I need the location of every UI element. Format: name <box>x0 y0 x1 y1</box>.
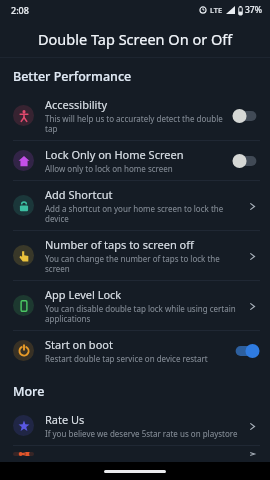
staticText: This will help us to accurately detect t… <box>45 113 226 134</box>
button[interactable]: Accessibility <box>232 108 260 124</box>
button[interactable]: Share <box>244 452 260 456</box>
button[interactable]: Rate Us <box>244 418 260 434</box>
staticText: You can change the number of taps to loc… <box>45 253 238 274</box>
staticText: Restart double tap service on device res… <box>45 353 208 364</box>
staticText: LTE <box>210 5 223 15</box>
staticText: Add a shortcut on your home screen to lo… <box>45 203 238 224</box>
button[interactable]: App Level Lock <box>0 281 270 330</box>
staticText: If you believe we deserve 5star rate us … <box>45 428 238 439</box>
staticText: Accessibility <box>45 97 108 112</box>
staticText: More <box>13 383 45 400</box>
button[interactable]: Start on boot <box>232 343 260 359</box>
staticText: App Level Lock <box>45 287 122 302</box>
button[interactable]: Lock Only on Home Screen <box>232 153 260 169</box>
button[interactable]: Start on boot <box>0 331 270 370</box>
staticText: Start on boot <box>45 337 113 352</box>
button[interactable]: Share <box>0 446 270 462</box>
staticText: Lock Only on Home Screen <box>45 147 184 162</box>
staticText: Rate Us <box>45 412 85 427</box>
staticText: Better Performance <box>13 68 132 85</box>
button[interactable]: Number of taps to screen off <box>244 248 260 264</box>
button[interactable]: Lock Only on Home Screen <box>0 141 270 180</box>
staticText: You can disable double tap lock while us… <box>45 303 238 324</box>
staticText: Add Shortcut <box>45 187 113 202</box>
staticText: 37% <box>245 4 262 16</box>
button[interactable]: Accessibility <box>0 91 270 140</box>
button[interactable]: Number of taps to screen off <box>0 231 270 280</box>
button[interactable]: Add Shortcut <box>0 181 270 230</box>
staticText: Double Tap Screen On or Off <box>38 29 233 49</box>
staticText: 2:08 <box>11 4 29 16</box>
staticText: Number of taps to screen off <box>45 237 194 252</box>
button[interactable]: Add Shortcut <box>244 198 260 214</box>
button[interactable]: Rate Us <box>0 406 270 445</box>
staticText: Allow only to lock on home screen <box>45 163 173 174</box>
button[interactable]: App Level Lock <box>244 298 260 314</box>
